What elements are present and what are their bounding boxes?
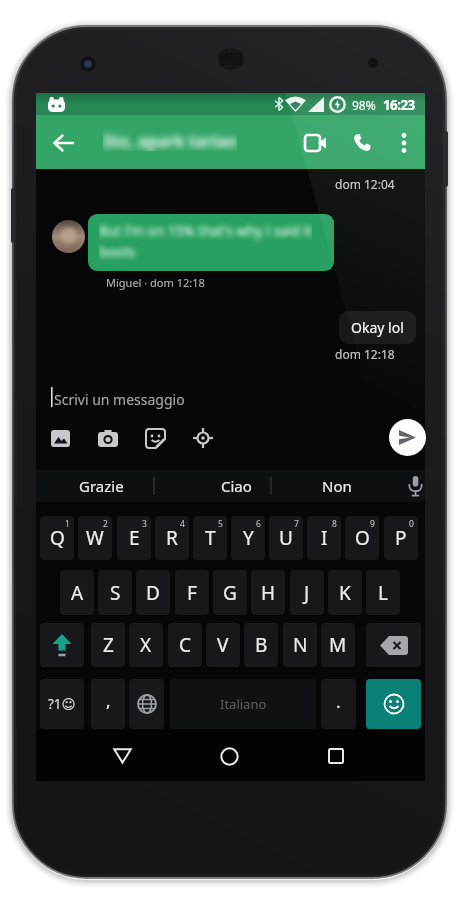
button[interactable]: [366, 679, 421, 729]
staticText: Okay lol: [351, 318, 404, 337]
button[interactable]: N: [283, 623, 317, 667]
staticText: 8: [332, 518, 337, 530]
button[interactable]: L: [366, 570, 400, 615]
staticText: R: [166, 525, 178, 551]
button[interactable]: Okay lol: [339, 311, 416, 344]
staticText: B: [255, 632, 268, 658]
button[interactable]: [40, 623, 84, 667]
staticText: ?1☺: [48, 695, 76, 713]
button[interactable]: H: [251, 570, 285, 615]
button[interactable]: Non: [271, 470, 402, 502]
button[interactable]: ,: [91, 679, 125, 729]
button[interactable]: S: [98, 570, 132, 615]
button[interactable]: [192, 427, 214, 449]
staticText: P: [395, 525, 407, 551]
staticText: A: [71, 580, 84, 606]
button[interactable]: C: [168, 623, 202, 667]
button[interactable]: B: [244, 623, 278, 667]
button[interactable]: I: [307, 516, 341, 560]
button[interactable]: [49, 129, 77, 157]
staticText: 6: [256, 518, 261, 530]
staticText: 9: [370, 518, 375, 530]
staticText: I: [321, 525, 328, 551]
staticText: Italiano: [220, 695, 267, 713]
button[interactable]: [209, 737, 249, 775]
button[interactable]: A: [60, 570, 94, 615]
button[interactable]: E: [117, 516, 151, 560]
staticText: 7: [294, 518, 299, 530]
staticText: 2: [103, 518, 108, 530]
button[interactable]: D: [136, 570, 170, 615]
button[interactable]: Y: [231, 516, 265, 560]
staticText: Y: [243, 525, 254, 551]
button[interactable]: G: [213, 570, 247, 615]
staticText: U: [279, 525, 293, 551]
button[interactable]: J: [290, 570, 324, 615]
button[interactable]: [129, 679, 164, 729]
staticText: V: [217, 632, 229, 658]
staticText: X: [140, 632, 152, 658]
staticText: N: [293, 632, 308, 658]
button[interactable]: But I'm on 15% that's why I said it boot…: [88, 214, 334, 271]
button[interactable]: [347, 128, 377, 158]
staticText: K: [339, 580, 351, 606]
staticText: Non: [322, 476, 352, 496]
staticText: Grazie: [79, 476, 124, 496]
staticText: dom 12:18: [335, 346, 395, 362]
button[interactable]: [102, 737, 142, 775]
staticText: Q: [50, 525, 65, 551]
button[interactable]: .: [321, 679, 356, 729]
button[interactable]: [301, 129, 329, 157]
button[interactable]: [144, 427, 166, 449]
staticText: 16:23: [383, 96, 415, 114]
button[interactable]: R: [155, 516, 189, 560]
button[interactable]: Q: [40, 516, 74, 560]
staticText: 1: [65, 518, 70, 530]
button[interactable]: P: [384, 516, 418, 560]
staticText: O: [355, 525, 370, 551]
staticText: M: [329, 632, 347, 658]
button[interactable]: [316, 737, 356, 775]
staticText: 98%: [352, 97, 376, 113]
staticText: .: [336, 690, 341, 713]
button[interactable]: V: [206, 623, 240, 667]
staticText: But I'm on 15% that's why I said it boot…: [99, 222, 312, 261]
staticText: T: [205, 525, 216, 551]
button[interactable]: T: [193, 516, 227, 560]
staticText: S: [110, 580, 121, 606]
button[interactable]: [393, 129, 415, 157]
staticText: Ciao: [221, 476, 252, 496]
button[interactable]: F: [175, 570, 209, 615]
staticText: E: [129, 525, 140, 551]
button[interactable]: [366, 623, 421, 667]
button[interactable]: [402, 473, 428, 499]
button[interactable]: K: [328, 570, 362, 615]
staticText: W: [86, 525, 104, 551]
staticText: D: [146, 580, 160, 606]
staticText: L: [378, 580, 388, 606]
button[interactable]: ?1☺: [40, 679, 84, 729]
button[interactable]: [97, 427, 119, 449]
button[interactable]: O: [345, 516, 379, 560]
staticText: F: [187, 580, 197, 606]
staticText: H: [261, 580, 276, 606]
button[interactable]: Italiano: [170, 679, 316, 729]
staticText: Scrivi un messaggio: [54, 390, 185, 409]
button[interactable]: M: [321, 623, 355, 667]
button[interactable]: Ciao: [166, 470, 306, 502]
button[interactable]: U: [269, 516, 303, 560]
staticText: G: [223, 580, 237, 606]
button[interactable]: [389, 419, 426, 456]
button[interactable]: Z: [91, 623, 125, 667]
staticText: J: [304, 580, 310, 606]
button[interactable]: Grazie: [48, 470, 154, 502]
button[interactable]: X: [129, 623, 163, 667]
button[interactable]: [49, 427, 71, 449]
staticText: Miguel · dom 12:18: [106, 275, 205, 290]
staticText: dom 12:04: [335, 176, 395, 192]
staticText: 4: [180, 518, 185, 530]
staticText: 5: [218, 518, 223, 530]
staticText: Z: [103, 632, 114, 658]
button[interactable]: W: [78, 516, 112, 560]
staticText: ,: [106, 689, 111, 712]
